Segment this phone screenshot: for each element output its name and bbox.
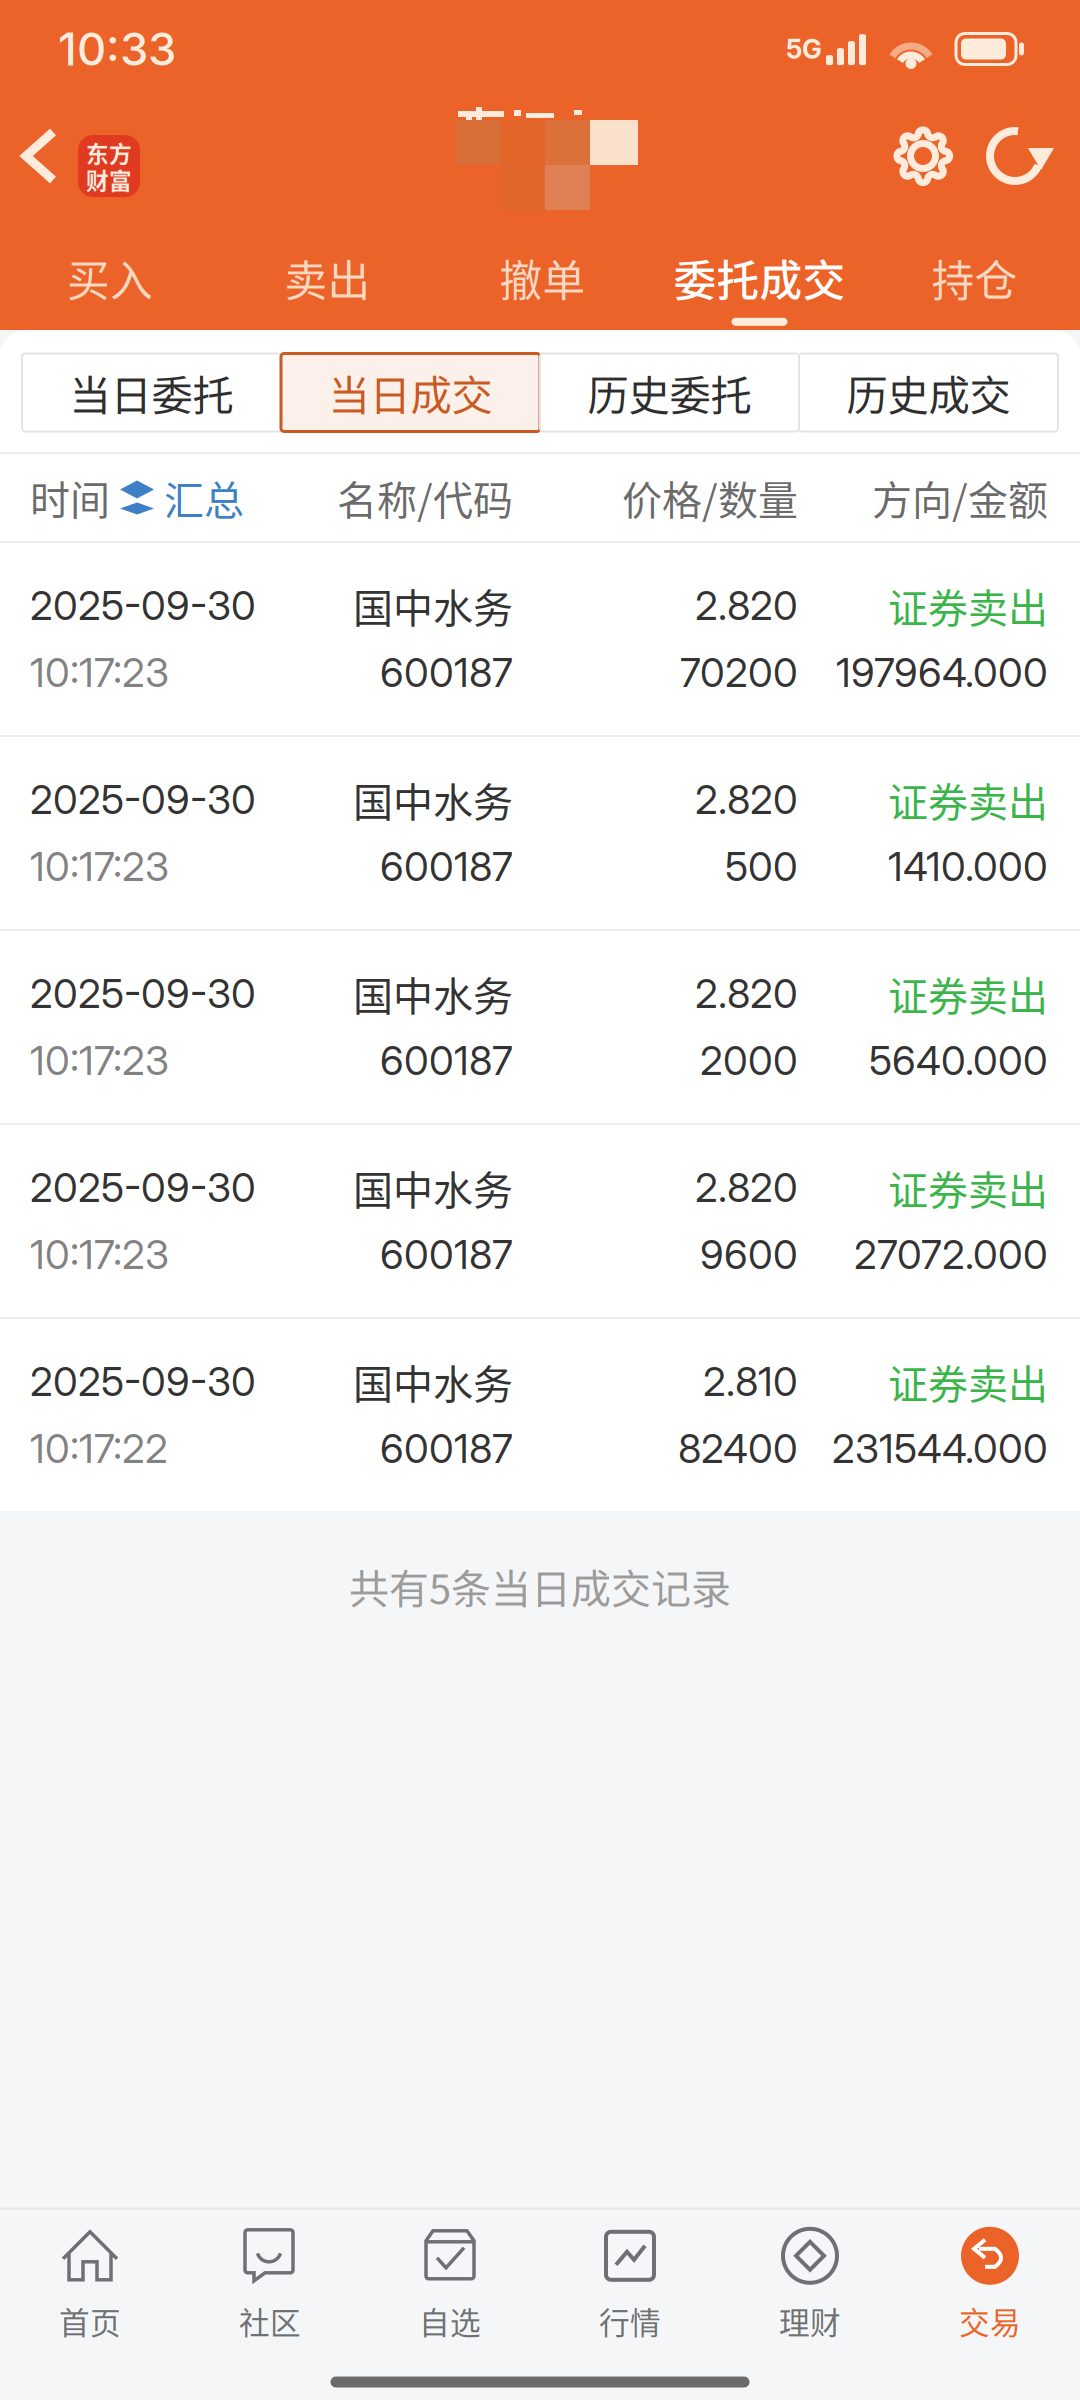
staticText: 当日成交: [328, 363, 492, 422]
button[interactable]: 2025-09-30: [0, 735, 1080, 929]
staticText: 10:17:23: [30, 842, 169, 891]
button[interactable]: 首页: [0, 2209, 180, 2337]
staticText: 委托成交: [673, 247, 845, 309]
staticText: 国中水务: [353, 770, 513, 828]
staticText: 2.820: [695, 969, 798, 1018]
button[interactable]: 当日委托: [22, 353, 281, 431]
staticText: 撤单: [499, 247, 585, 309]
staticText: 财富: [86, 163, 132, 196]
staticText: 买入: [67, 247, 153, 309]
staticText: 东方: [86, 136, 132, 169]
staticText: 10:33: [58, 22, 176, 76]
staticText: 600187: [380, 1230, 513, 1279]
staticText: 汇总: [164, 468, 244, 526]
staticText: 价格/数量: [622, 468, 798, 526]
staticText: 理财: [779, 2299, 841, 2343]
staticText: 600187: [380, 842, 513, 891]
button[interactable]: 返回: [10, 98, 70, 214]
staticText: 500: [725, 842, 798, 891]
staticText: 行情: [599, 2299, 661, 2343]
staticText: 自选: [419, 2299, 481, 2343]
button[interactable]: 当日成交: [281, 353, 540, 431]
staticText: 国中水务: [353, 1158, 513, 1216]
button[interactable]: 自选: [360, 2209, 540, 2337]
staticText: 国中水务: [353, 1352, 513, 1410]
staticText: 当日委托: [69, 363, 233, 422]
staticText: 名称/代码: [337, 468, 513, 526]
button[interactable]: 历史委托: [540, 353, 799, 431]
button[interactable]: 撤单: [435, 214, 650, 330]
staticText: 2025-09-30: [30, 775, 256, 824]
button[interactable]: 交易: [900, 2209, 1080, 2337]
staticText: 2.820: [695, 581, 798, 630]
staticText: 600187: [380, 1036, 513, 1085]
button[interactable]: 行情: [540, 2209, 720, 2337]
staticText: 197964.000: [836, 648, 1048, 697]
staticText: 2.820: [695, 1163, 798, 1212]
staticText: 9600: [700, 1230, 798, 1279]
staticText: 27072.000: [854, 1230, 1048, 1279]
staticText: 1410.000: [888, 842, 1048, 891]
staticText: 82400: [678, 1424, 798, 1473]
staticText: 5G: [786, 33, 822, 65]
staticText: 社区: [239, 2299, 301, 2343]
staticText: 600187: [380, 1424, 513, 1473]
staticText: 2025-09-30: [30, 1357, 256, 1406]
staticText: 2.820: [695, 775, 798, 824]
staticText: 证券卖出: [888, 770, 1048, 828]
staticText: 10:17:23: [30, 1036, 169, 1085]
staticText: 国中水务: [353, 964, 513, 1022]
button[interactable]: 2025-09-30: [0, 929, 1080, 1123]
staticText: 持仓: [931, 247, 1017, 309]
button[interactable]: 买入: [0, 214, 220, 330]
button[interactable]: 卖出: [220, 214, 435, 330]
staticText: 600187: [380, 648, 513, 697]
staticText: 证券卖出: [888, 576, 1048, 634]
staticText: 2025-09-30: [30, 1163, 256, 1212]
staticText: 2025-09-30: [30, 969, 256, 1018]
staticText: 2.810: [703, 1357, 798, 1406]
staticText: 历史成交: [846, 363, 1010, 422]
button[interactable]: 理财: [720, 2209, 900, 2337]
staticText: 共有5条当日成交记录: [349, 1557, 731, 1615]
staticText: 卖出: [284, 247, 370, 309]
staticText: 10:17:23: [30, 1230, 169, 1279]
button[interactable]: 委托成交: [650, 214, 869, 330]
staticText: 231544.000: [832, 1424, 1048, 1473]
button[interactable]: 2025-09-30: [0, 1317, 1080, 1511]
staticText: 证券卖出: [888, 1352, 1048, 1410]
staticText: 证券卖出: [888, 964, 1048, 1022]
button[interactable]: 刷新: [983, 98, 1051, 214]
button[interactable]: 2025-09-30: [0, 1123, 1080, 1317]
staticText: 交易: [959, 2299, 1021, 2343]
staticText: 10:17:23: [30, 648, 169, 697]
staticText: 首页: [59, 2299, 121, 2343]
staticText: 2025-09-30: [30, 581, 256, 630]
button[interactable]: 2025-09-30: [0, 541, 1080, 735]
staticText: 时间: [30, 468, 110, 526]
button[interactable]: 历史成交: [799, 353, 1058, 431]
staticText: 证券卖出: [888, 1158, 1048, 1216]
button[interactable]: 持仓: [869, 214, 1080, 330]
staticText: 5640.000: [869, 1036, 1048, 1085]
staticText: 2000: [700, 1036, 798, 1085]
staticText: 方向/金额: [872, 468, 1048, 526]
staticText: 历史委托: [587, 363, 751, 422]
button[interactable]: 设置: [877, 98, 969, 214]
staticText: 70200: [680, 648, 798, 697]
staticText: 国中水务: [353, 576, 513, 634]
staticText: 10:17:22: [30, 1424, 168, 1473]
button[interactable]: 社区: [180, 2209, 360, 2337]
